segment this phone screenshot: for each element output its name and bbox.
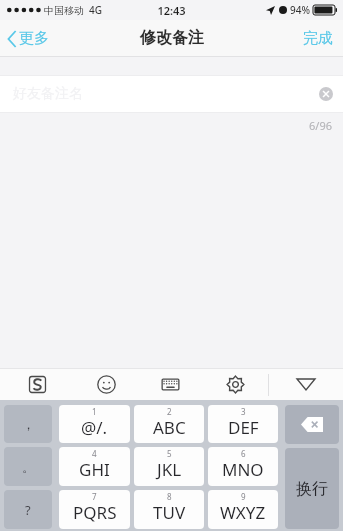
button[interactable]: Clear text — [309, 87, 343, 101]
staticText: ? — [25, 501, 31, 519]
button[interactable]: 完成 — [293, 25, 343, 52]
button[interactable]: 9 — [208, 490, 278, 529]
staticText: 2 — [167, 406, 172, 417]
staticText: DEF — [228, 416, 259, 439]
staticText: 6 — [241, 448, 246, 459]
button[interactable]: 3 — [208, 405, 278, 443]
staticText: 12:43 — [157, 3, 186, 18]
staticText: 4G — [89, 3, 102, 17]
button[interactable]: 8 — [134, 490, 204, 529]
button[interactable]: 1 — [59, 405, 130, 443]
staticText: 1 — [92, 406, 97, 417]
staticText: PQRS — [73, 501, 117, 524]
staticText: WXYZ — [220, 501, 266, 524]
staticText: GHI — [79, 458, 110, 481]
staticText: 6/96 — [309, 118, 332, 133]
staticText: 5 — [167, 448, 172, 459]
staticText: ， — [22, 416, 35, 432]
staticText: 94% — [290, 3, 310, 17]
button[interactable]: ? — [4, 490, 52, 529]
staticText: 9 — [241, 491, 246, 502]
staticText: ABC — [153, 416, 186, 439]
button[interactable]: 4 — [59, 447, 130, 486]
button[interactable]: 。 — [4, 447, 52, 486]
button[interactable]: Settings — [203, 369, 268, 400]
button[interactable]: 5 — [134, 447, 204, 486]
staticText: 好友备注名 — [13, 85, 83, 103]
button[interactable]: Emoji — [74, 369, 138, 400]
button[interactable]: ， — [4, 405, 52, 443]
staticText: 4 — [92, 448, 97, 459]
staticText: @/. — [81, 416, 108, 439]
button[interactable]: 换行 — [285, 448, 339, 529]
staticText: 7 — [92, 491, 97, 502]
button[interactable]: 7 — [59, 490, 130, 529]
button[interactable]: 6 — [208, 447, 278, 486]
staticText: 中国移动 — [44, 4, 84, 17]
staticText: 换行 — [296, 479, 328, 499]
staticText: TUV — [153, 501, 186, 524]
staticText: 完成 — [303, 29, 333, 48]
staticText: 3 — [241, 406, 246, 417]
button[interactable]: Keyboard layout — [138, 369, 203, 400]
button[interactable]: 2 — [134, 405, 204, 443]
button[interactable]: Hide keyboard — [269, 369, 343, 400]
button[interactable]: 更多 — [0, 25, 59, 52]
staticText: 修改备注 — [140, 28, 204, 48]
staticText: 更多 — [19, 29, 49, 48]
staticText: MNO — [222, 458, 264, 481]
staticText: 8 — [167, 491, 172, 502]
staticText: 。 — [22, 459, 35, 475]
staticText: JKL — [157, 458, 182, 481]
button[interactable]: Backspace — [285, 405, 339, 444]
button[interactable]: Sogou input — [0, 369, 74, 400]
button[interactable]: 好友备注名 — [0, 76, 343, 112]
